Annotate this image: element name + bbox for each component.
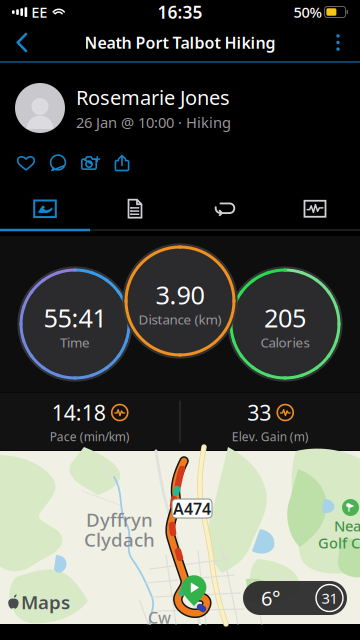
button[interactable]: Map bbox=[0, 189, 90, 229]
staticText: 55:41 bbox=[43, 301, 106, 334]
button[interactable]: Share bbox=[106, 148, 138, 178]
button[interactable]: More options bbox=[316, 23, 360, 61]
button[interactable]: Laps bbox=[180, 189, 270, 229]
button[interactable]: Comment bbox=[42, 148, 74, 178]
staticText: 3.90 bbox=[155, 278, 204, 311]
staticText: 31 bbox=[321, 588, 337, 608]
staticText: A474 bbox=[173, 498, 211, 519]
staticText: 50% bbox=[294, 2, 322, 22]
staticText: Neath Port Talbot Hiking bbox=[84, 32, 275, 53]
staticText: 16:35 bbox=[157, 0, 202, 23]
staticText: Distance (km) bbox=[138, 310, 221, 328]
button[interactable]: Details bbox=[90, 189, 180, 229]
staticText: Calories bbox=[260, 333, 309, 351]
button[interactable]: Charts bbox=[270, 189, 360, 229]
button[interactable]: Weather, 6 degrees, air quality 31 bbox=[243, 581, 347, 615]
staticText: 205 bbox=[264, 301, 306, 334]
button[interactable]: Like bbox=[10, 148, 42, 178]
staticText: Maps bbox=[21, 590, 70, 614]
staticText: Clydach bbox=[84, 527, 155, 552]
button[interactable]: Add photo bbox=[74, 148, 106, 178]
staticText: Nea bbox=[334, 516, 360, 535]
staticText: 33 bbox=[247, 398, 271, 427]
staticText: EE bbox=[31, 2, 47, 22]
staticText: 26 Jan @ 10:00 · Hiking bbox=[76, 112, 231, 132]
staticText: Golf C bbox=[318, 533, 360, 552]
staticText: Pace (min/km) bbox=[50, 429, 130, 445]
button[interactable]: Back bbox=[0, 23, 44, 61]
staticText: Time bbox=[60, 333, 90, 351]
staticText: Dyffryn bbox=[86, 507, 153, 532]
staticText: Elev. Gain (m) bbox=[232, 429, 309, 445]
staticText: Rosemarie Jones bbox=[76, 84, 230, 111]
staticText: 6° bbox=[261, 585, 281, 611]
staticText: 14:18 bbox=[52, 398, 106, 427]
staticText: Cw bbox=[148, 607, 171, 628]
